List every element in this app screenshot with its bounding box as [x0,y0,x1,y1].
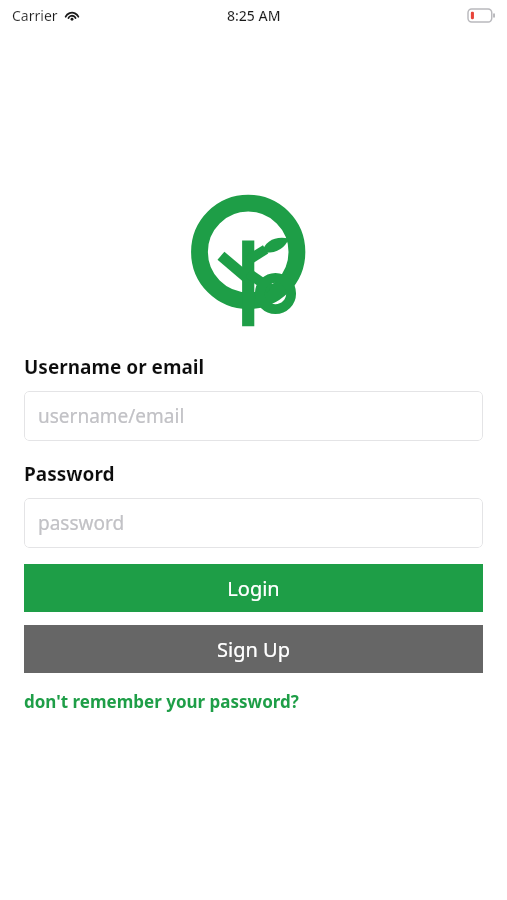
staticText: Login [227,575,280,602]
button[interactable]: username/email [24,391,483,441]
staticText: Username or email [24,354,205,380]
staticText: password [38,510,125,536]
staticText: 8:25 AM [227,6,281,25]
staticText: Password [24,461,115,487]
button[interactable]: password [24,498,483,548]
button[interactable]: Sign Up [24,625,483,673]
staticText: don't remember your password? [24,690,299,713]
other: App logo [196,202,312,330]
staticText: Carrier [12,6,58,25]
staticText: Sign Up [217,636,290,663]
button[interactable]: Login [24,564,483,612]
button[interactable]: don't remember your password? [24,690,299,713]
staticText: username/email [38,403,185,429]
